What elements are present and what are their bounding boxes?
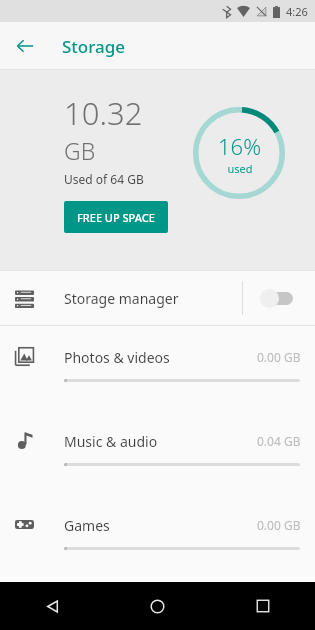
button[interactable]: Music & audio	[0, 410, 315, 494]
staticText: Storage	[62, 35, 126, 58]
staticText: 0.00 GB	[257, 517, 301, 533]
staticText: 16%	[218, 131, 261, 161]
staticText: used	[227, 161, 253, 176]
staticText: Music & audio	[64, 432, 158, 451]
button[interactable]: Storage manager toggle	[255, 281, 305, 315]
button[interactable]: Back	[0, 582, 105, 630]
button[interactable]: Home	[105, 582, 210, 630]
staticText: 4:26	[286, 4, 308, 19]
button[interactable]: Games	[0, 494, 315, 578]
staticText: 0.04 GB	[257, 433, 301, 449]
button[interactable]: Storage manager	[0, 271, 315, 325]
staticText: Storage manager	[64, 289, 179, 308]
staticText: 0.00 GB	[257, 349, 301, 365]
button[interactable]: Recent apps	[210, 582, 315, 630]
staticText: 10.32	[64, 92, 143, 134]
staticText: GB	[64, 135, 96, 166]
button[interactable]: FREE UP SPACE	[64, 201, 168, 233]
staticText: Photos & videos	[64, 348, 170, 367]
button[interactable]: Photos & videos	[0, 326, 315, 410]
staticText: Used of 64 GB	[64, 171, 144, 187]
staticText: FREE UP SPACE	[77, 210, 155, 225]
button[interactable]: Back	[8, 29, 42, 63]
staticText: Games	[64, 516, 110, 535]
